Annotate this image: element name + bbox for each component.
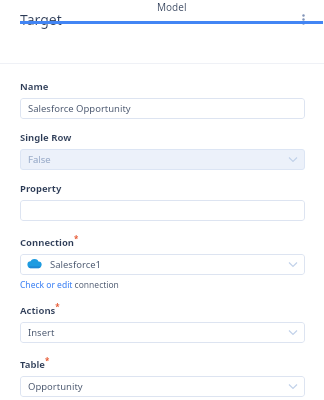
staticText: Table* <box>20 355 50 371</box>
staticText: Target <box>20 10 62 29</box>
button[interactable] <box>20 200 305 221</box>
button[interactable]: Check or edit connection <box>20 279 119 291</box>
button[interactable]: Salesforce1 <box>20 254 305 275</box>
staticText: Salesforce1 <box>50 258 102 271</box>
staticText: Opportunity <box>28 380 83 393</box>
staticText: Check or edit connection <box>20 279 119 291</box>
staticText: Insert <box>28 326 55 339</box>
button[interactable]: More options <box>290 6 316 32</box>
staticText: Model <box>157 0 187 14</box>
staticText: Single Row <box>20 131 72 144</box>
button[interactable]: Model <box>19 0 324 27</box>
staticText: Connection* <box>20 233 79 249</box>
button[interactable]: False <box>20 149 305 170</box>
staticText: Actions* <box>20 301 60 317</box>
staticText: Property <box>20 182 62 195</box>
staticText: Name <box>20 80 49 93</box>
staticText: Salesforce Opportunity <box>28 102 131 115</box>
button[interactable]: Opportunity <box>20 376 305 397</box>
staticText: False <box>28 153 51 166</box>
button[interactable]: Salesforce Opportunity <box>20 98 305 119</box>
button[interactable]: Insert <box>20 322 305 343</box>
